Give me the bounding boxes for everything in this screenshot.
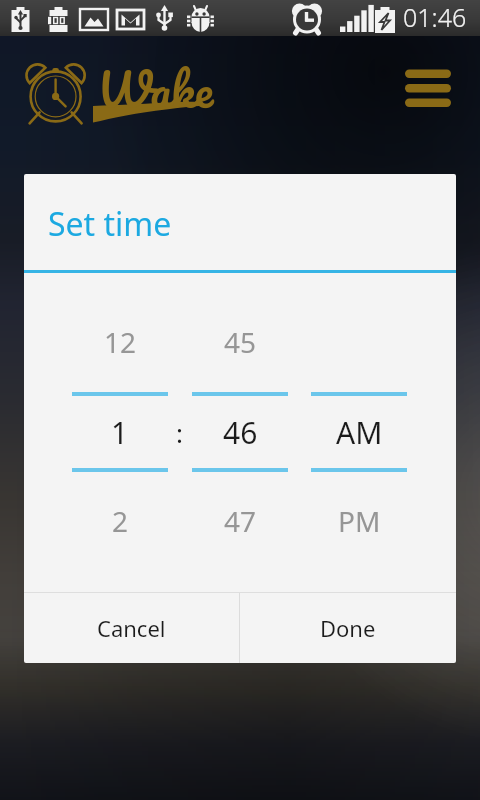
button[interactable]: Cancel: [24, 593, 239, 663]
staticText: AM: [336, 412, 383, 453]
staticText: 12: [104, 323, 137, 361]
staticText: :: [176, 415, 183, 450]
button[interactable]: [299, 304, 419, 554]
staticText: 2: [112, 502, 129, 540]
staticText: 46: [223, 412, 258, 453]
staticText: 01:46: [403, 0, 467, 34]
staticText: Cancel: [97, 613, 166, 643]
staticText: 1: [111, 412, 129, 453]
button[interactable]: Done: [240, 593, 456, 663]
staticText: Wake: [97, 49, 214, 128]
staticText: Set time: [48, 202, 172, 246]
staticText: PM: [338, 502, 381, 540]
staticText: 45: [224, 323, 257, 361]
staticText: Done: [320, 613, 376, 643]
staticText: 47: [224, 502, 257, 540]
button[interactable]: [180, 304, 300, 554]
button[interactable]: [60, 304, 180, 554]
button[interactable]: Menu: [396, 60, 460, 116]
